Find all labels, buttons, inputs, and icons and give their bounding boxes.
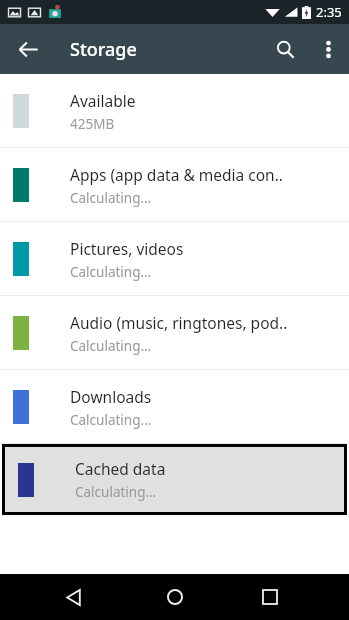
button[interactable]: More options	[307, 28, 349, 70]
staticText: Calculating…	[70, 189, 152, 207]
button[interactable]: Search	[263, 27, 307, 71]
staticText: Pictures, videos	[70, 238, 184, 259]
staticText: Downloads	[70, 386, 152, 407]
staticText: Calculating…	[70, 411, 152, 429]
button[interactable]: Apps (app data & media con..	[0, 148, 349, 222]
staticText: Calculating…	[70, 337, 152, 355]
staticText: Cached data	[75, 458, 166, 479]
button[interactable]: Pictures, videos	[0, 222, 349, 296]
button[interactable]: Downloads	[0, 370, 349, 444]
staticText: 2:35	[316, 3, 342, 21]
button[interactable]: Available	[0, 74, 349, 148]
staticText: Apps (app data & media con..	[70, 164, 283, 185]
button[interactable]: Back	[6, 27, 50, 71]
button[interactable]: Cached data	[5, 447, 344, 512]
button[interactable]: Audio (music, ringtones, pod..	[0, 296, 349, 370]
staticText: Storage	[70, 37, 137, 62]
staticText: Calculating…	[70, 263, 152, 281]
staticText: Calculating…	[75, 483, 157, 501]
button[interactable]: Recent apps	[249, 576, 291, 618]
staticText: Audio (music, ringtones, pod..	[70, 312, 288, 333]
button[interactable]: Back	[52, 576, 94, 618]
staticText: Available	[70, 90, 136, 111]
staticText: 425MB	[70, 115, 115, 133]
button[interactable]: Home	[154, 576, 196, 618]
